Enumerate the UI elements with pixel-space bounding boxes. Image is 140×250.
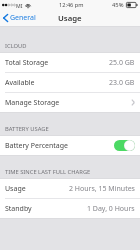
staticText: ICLOUD: [5, 42, 27, 49]
staticText: Available: [5, 78, 35, 88]
other: Battery Percentage toggle, on: [114, 140, 135, 151]
button[interactable]: Manage Storage: [0, 93, 140, 112]
staticText: TIME SINCE LAST FULL CHARGE: [5, 168, 91, 175]
button[interactable]: Usage: [0, 179, 140, 198]
staticText: 12:46 pm: [59, 1, 84, 9]
button[interactable]: Standby: [0, 199, 140, 218]
staticText: 45%: [112, 1, 124, 9]
staticText: Standby: [5, 204, 32, 214]
button[interactable]: Available: [0, 73, 140, 92]
staticText: 23.0 GB: [109, 78, 135, 88]
staticText: 25.0 GB: [109, 58, 135, 68]
staticText: BATTERY USAGE: [5, 125, 49, 132]
staticText: Total Storage: [5, 58, 49, 68]
staticText: General: [10, 13, 36, 23]
staticText: MI: [16, 2, 23, 9]
staticText: Usage: [5, 184, 26, 194]
staticText: Battery Percentage: [5, 141, 69, 151]
button[interactable]: General: [0, 13, 40, 23]
button[interactable]: Total Storage: [0, 53, 140, 72]
staticText: Usage: [58, 13, 82, 24]
staticText: 1 Day, 0 Hours: [87, 204, 135, 214]
button[interactable]: Battery Percentage: [0, 136, 140, 155]
staticText: 2 Hours, 15 Minutes: [69, 184, 135, 194]
staticText: Manage Storage: [5, 98, 60, 108]
